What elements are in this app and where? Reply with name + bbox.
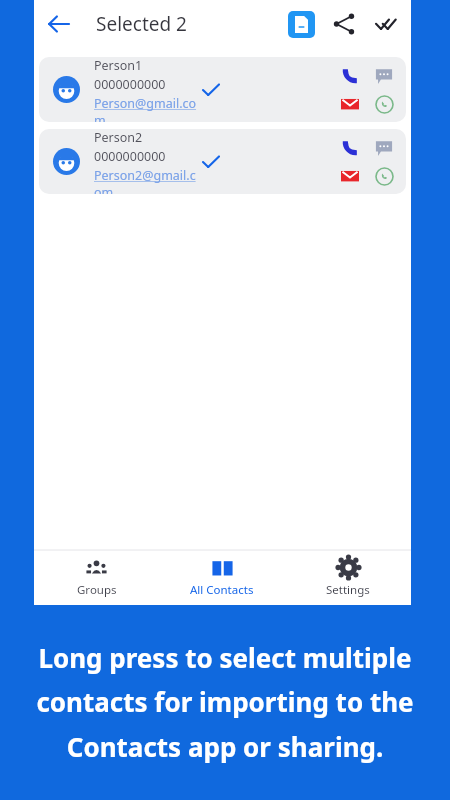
staticText: Person@gmail.com: [94, 95, 201, 122]
button[interactable]: Call: [338, 136, 362, 160]
button[interactable]: WhatsApp: [372, 92, 396, 116]
staticText: Settings: [326, 582, 370, 598]
staticText: 0000000000: [94, 76, 166, 93]
button[interactable]: Person2: [39, 129, 406, 194]
button[interactable]: Message: [372, 64, 396, 88]
button[interactable]: Email: [338, 164, 362, 188]
button[interactable]: All Contacts: [159, 550, 285, 605]
staticText: Person1: [94, 57, 143, 74]
button[interactable]: Export VCF: [279, 2, 323, 46]
button[interactable]: Email: [338, 92, 362, 116]
button[interactable]: Back: [34, 0, 82, 48]
staticText: 0000000000: [94, 148, 166, 165]
staticText: Selected 2: [96, 11, 187, 37]
staticText: Person2@gmail.com: [94, 167, 201, 194]
button[interactable]: Call: [338, 64, 362, 88]
button[interactable]: Settings: [285, 550, 411, 605]
button[interactable]: Share: [323, 3, 365, 45]
button[interactable]: Select all: [365, 2, 409, 46]
staticText: Person2: [94, 129, 143, 146]
staticText: Long press to select multiple contacts f…: [10, 640, 440, 765]
staticText: All Contacts: [190, 582, 254, 598]
staticText: Groups: [77, 582, 117, 598]
button[interactable]: Message: [372, 136, 396, 160]
button[interactable]: WhatsApp: [372, 164, 396, 188]
button[interactable]: Groups: [34, 550, 159, 605]
button[interactable]: Person1: [39, 57, 406, 122]
